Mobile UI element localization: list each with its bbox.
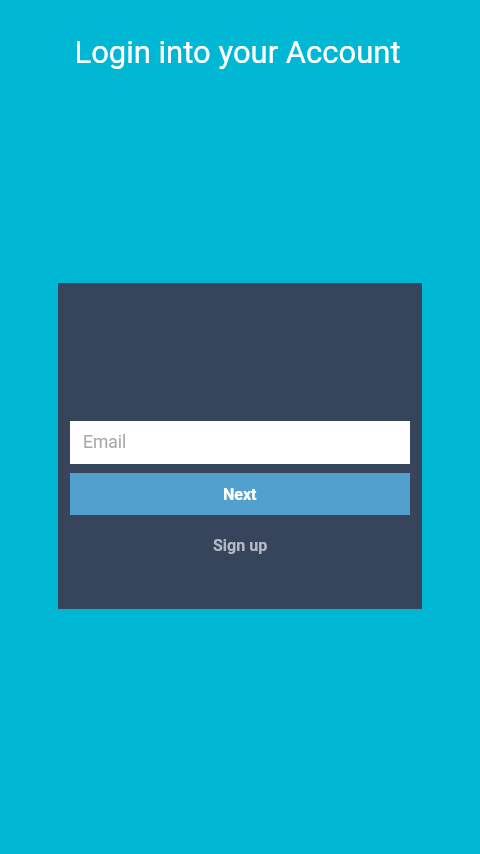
staticText: Login into your Account [74, 34, 401, 70]
staticText: Next [223, 485, 257, 504]
staticText: Sign up [213, 536, 268, 555]
button[interactable]: Email [70, 421, 410, 464]
button[interactable]: Next [70, 473, 410, 515]
button[interactable]: Sign up [70, 529, 410, 561]
staticText: Email [83, 432, 127, 453]
